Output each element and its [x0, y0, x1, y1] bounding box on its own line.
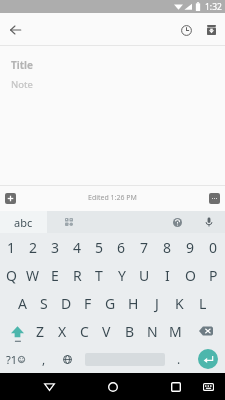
button[interactable]: P — [202, 261, 225, 289]
staticText: Title — [11, 58, 34, 72]
button[interactable]: 3 — [44, 233, 66, 261]
button[interactable]: Voice input — [200, 213, 218, 231]
staticText: 5 — [95, 238, 104, 257]
staticText: . — [177, 351, 181, 367]
button[interactable]: 7 — [133, 233, 156, 261]
staticText: 6 — [117, 238, 126, 257]
staticText: abc — [14, 215, 33, 230]
button[interactable]: Space — [78, 345, 172, 373]
button[interactable]: Back — [36, 373, 63, 400]
staticText: D — [61, 294, 72, 313]
button[interactable]: S — [33, 289, 55, 317]
button[interactable]: O — [179, 261, 202, 289]
button[interactable]: 5 — [88, 233, 110, 261]
button[interactable]: Back — [3, 18, 27, 42]
staticText: Q — [6, 266, 17, 285]
button[interactable]: 0 — [202, 233, 225, 261]
button[interactable]: abc — [0, 211, 47, 233]
staticText: V — [102, 322, 111, 341]
staticText: 1 — [7, 238, 16, 257]
staticText: E — [51, 266, 59, 285]
staticText: I — [165, 266, 170, 285]
button[interactable]: Symbols — [0, 345, 30, 373]
staticText: Z — [36, 322, 45, 341]
button[interactable]: U — [133, 261, 156, 289]
staticText: 9 — [186, 238, 195, 257]
staticText: 1:32 — [205, 1, 222, 13]
button[interactable]: . — [168, 345, 190, 373]
staticText: 0 — [209, 238, 218, 257]
button[interactable]: N — [141, 317, 164, 345]
button[interactable]: Q — [0, 261, 22, 289]
button[interactable]: W — [22, 261, 44, 289]
staticText: 7 — [140, 238, 149, 257]
staticText: S — [40, 294, 48, 313]
button[interactable]: V — [95, 317, 118, 345]
button[interactable]: Add — [5, 193, 16, 204]
button[interactable]: K — [168, 289, 191, 317]
staticText: 4 — [73, 238, 82, 257]
button[interactable]: Y — [110, 261, 133, 289]
staticText: U — [139, 266, 150, 285]
button[interactable]: Archive — [199, 18, 223, 42]
button[interactable]: R — [66, 261, 88, 289]
staticText: C — [80, 322, 89, 341]
button[interactable]: X — [51, 317, 73, 345]
button[interactable]: L — [191, 289, 214, 317]
button[interactable]: Shift — [0, 317, 29, 345]
button[interactable]: 4 — [66, 233, 88, 261]
button[interactable]: Recents — [162, 373, 189, 400]
staticText: F — [84, 294, 92, 313]
button[interactable]: H — [122, 289, 145, 317]
staticText: 8 — [163, 238, 172, 257]
staticText: N — [147, 322, 158, 341]
staticText: Y — [118, 266, 126, 285]
staticText: ?1 — [6, 352, 18, 367]
button[interactable]: Change language — [56, 345, 78, 373]
staticText: A — [18, 294, 27, 313]
button[interactable]: Help — [168, 213, 186, 231]
button[interactable]: 8 — [156, 233, 179, 261]
button[interactable]: E — [44, 261, 66, 289]
staticText: O — [185, 266, 196, 285]
staticText: P — [209, 266, 218, 285]
staticText: Note — [11, 78, 33, 91]
staticText: 3 — [51, 238, 60, 257]
button[interactable]: T — [88, 261, 110, 289]
button[interactable]: Reminder — [174, 18, 198, 42]
button[interactable]: 9 — [179, 233, 202, 261]
button[interactable]: D — [55, 289, 77, 317]
button[interactable]: Backspace — [187, 317, 225, 345]
button[interactable]: 1 — [0, 233, 22, 261]
button[interactable]: J — [145, 289, 168, 317]
button[interactable]: , — [32, 345, 56, 373]
staticText: J — [155, 294, 159, 313]
staticText: , — [42, 351, 46, 367]
button[interactable]: Z — [29, 317, 51, 345]
staticText: M — [169, 322, 182, 341]
button[interactable]: 2 — [22, 233, 44, 261]
button[interactable]: B — [118, 317, 141, 345]
staticText: B — [125, 322, 135, 341]
staticText: L — [199, 294, 207, 313]
staticText: K — [175, 294, 184, 313]
staticText: R — [73, 266, 82, 285]
button[interactable]: Stickers — [54, 211, 84, 233]
button[interactable]: A — [11, 289, 33, 317]
staticText: Edited 1:26 PM — [88, 193, 137, 203]
button[interactable]: C — [73, 317, 95, 345]
button[interactable]: Switch keyboard — [195, 373, 222, 400]
staticText: T — [95, 266, 103, 285]
button[interactable]: G — [99, 289, 122, 317]
staticText: X — [58, 322, 67, 341]
button[interactable]: 6 — [110, 233, 133, 261]
staticText: W — [26, 266, 40, 285]
button[interactable]: Enter — [198, 349, 218, 369]
button[interactable]: M — [164, 317, 187, 345]
button[interactable]: Home — [99, 373, 126, 400]
button[interactable]: More options — [209, 193, 220, 204]
staticText: G — [105, 294, 116, 313]
staticText: H — [128, 294, 139, 313]
button[interactable]: F — [77, 289, 99, 317]
button[interactable]: I — [156, 261, 179, 289]
